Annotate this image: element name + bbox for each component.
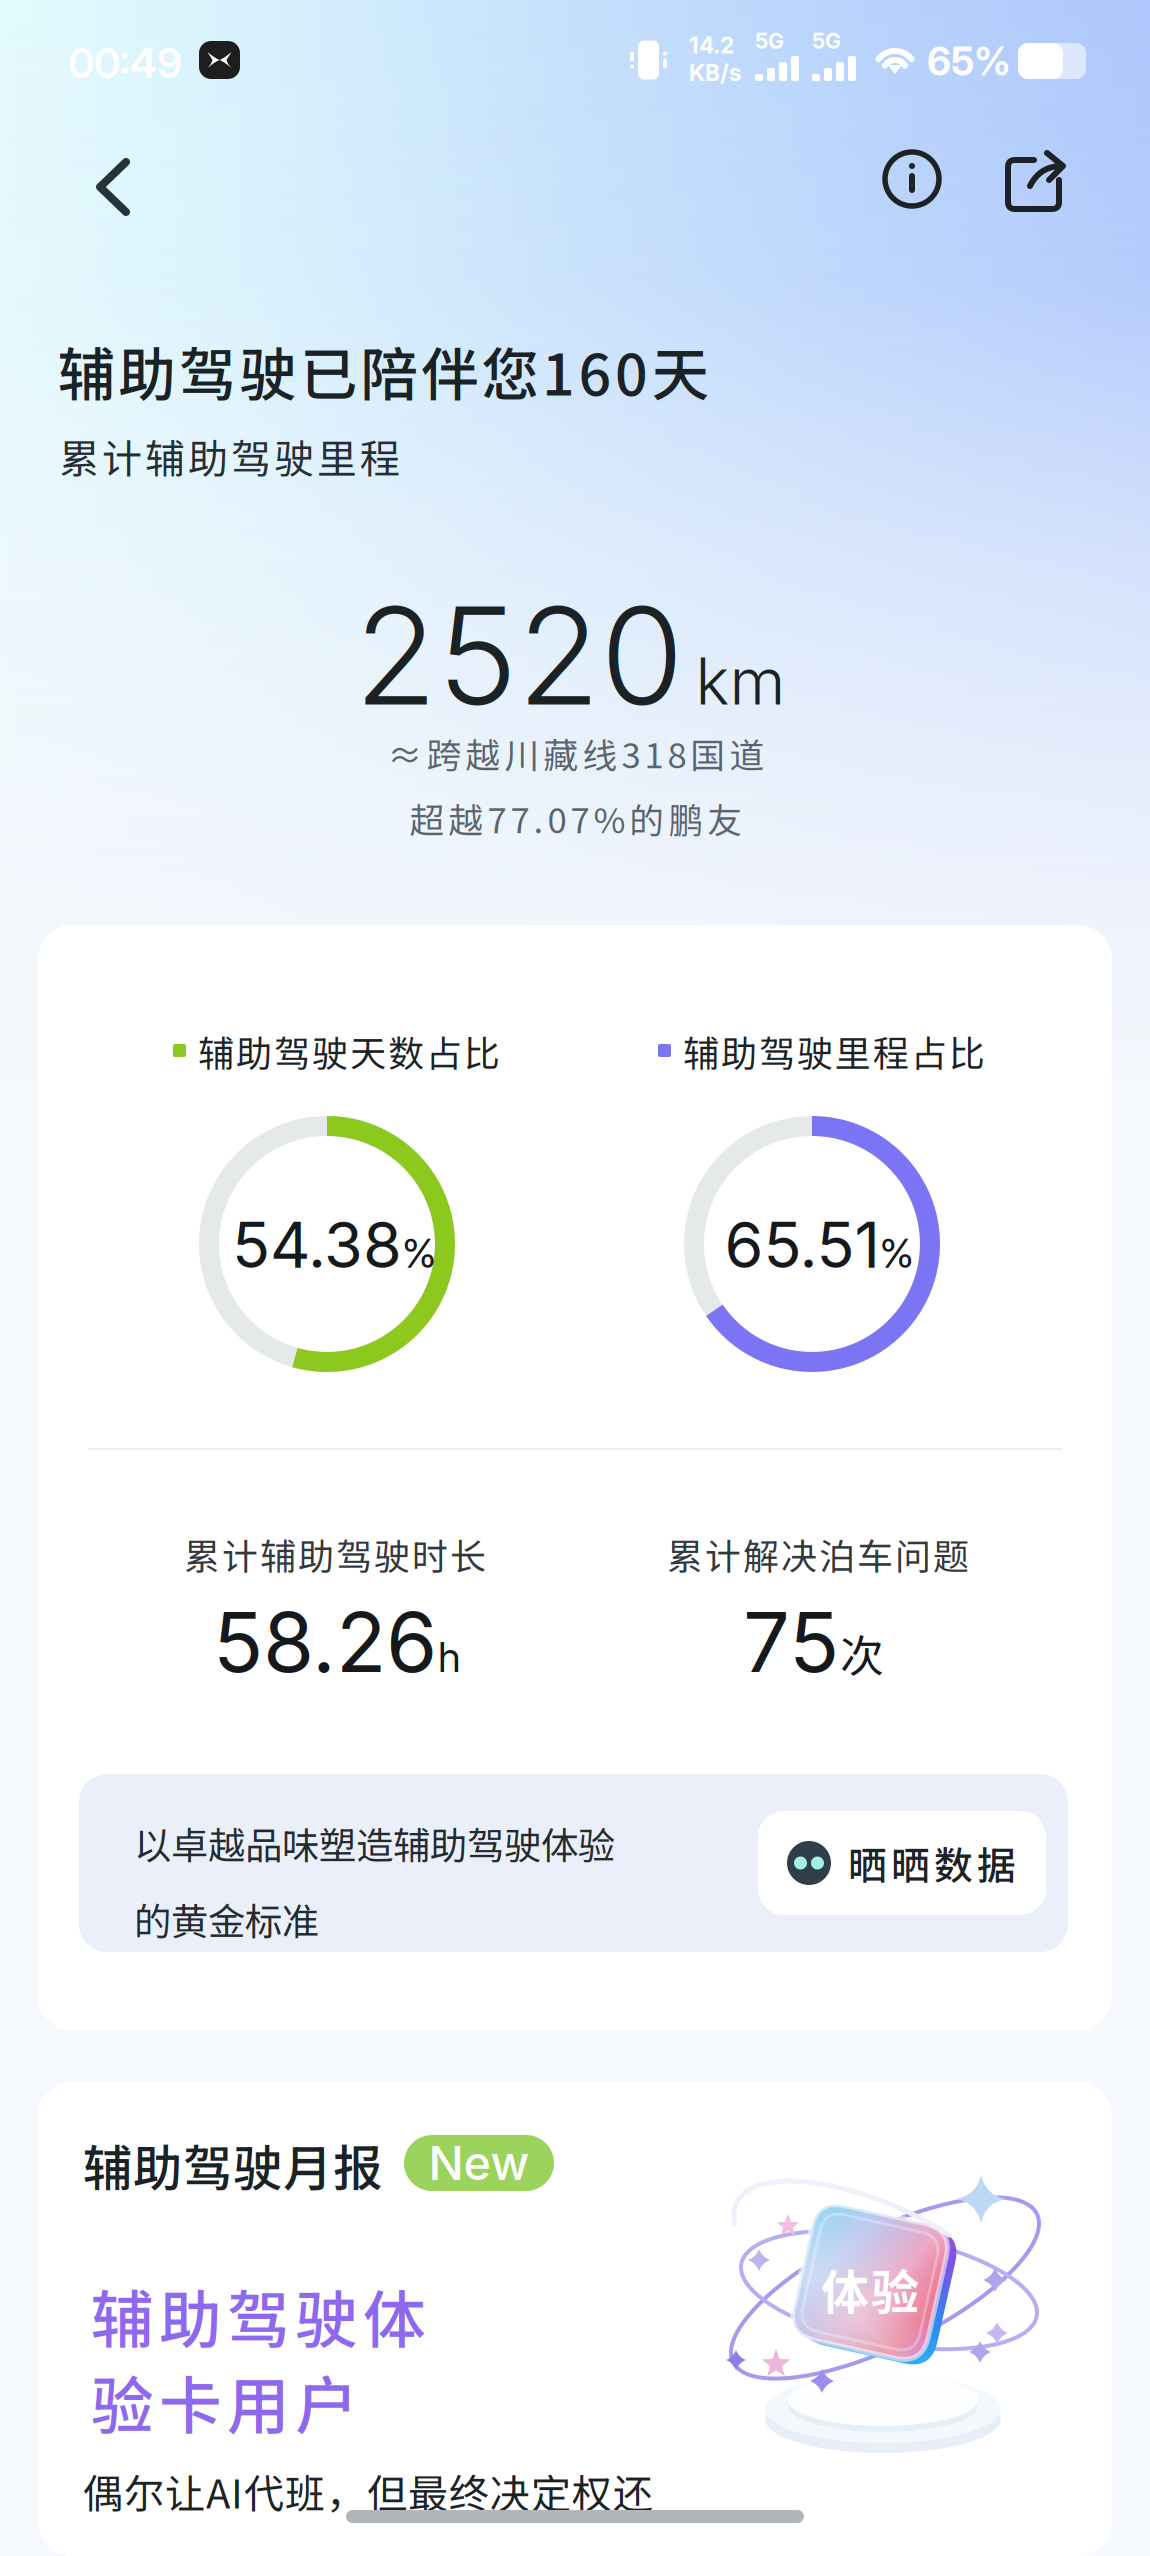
staticText: h bbox=[438, 1632, 461, 1682]
staticText: 75 bbox=[743, 1592, 839, 1692]
button[interactable]: Share bbox=[1004, 152, 1066, 222]
staticText: ≈跨越川藏线318国道 bbox=[387, 728, 764, 778]
staticText: % bbox=[879, 1229, 913, 1277]
staticText: 累计辅助驾驶里程 bbox=[59, 427, 400, 485]
staticText: 辅助驾驶天数占比 bbox=[198, 1025, 500, 1077]
staticText: 2520 bbox=[354, 574, 683, 737]
staticText: 辅助驾驶月报 bbox=[83, 2129, 382, 2200]
staticText: 超越77.07%的鹏友 bbox=[409, 793, 742, 843]
staticText: 晒晒数据 bbox=[848, 1835, 1016, 1891]
staticText: 辅助驾驶里程占比 bbox=[683, 1025, 985, 1077]
staticText: 次 bbox=[840, 1621, 884, 1685]
staticText: 的黄金标准 bbox=[134, 1892, 319, 1946]
button[interactable]: Back bbox=[92, 154, 166, 242]
staticText: 体验 bbox=[821, 2254, 919, 2324]
staticText: KB/s bbox=[689, 59, 742, 86]
staticText: 58.26 bbox=[213, 1592, 437, 1692]
button[interactable]: 晒晒数据 bbox=[758, 1811, 1046, 1915]
staticText: 5G bbox=[755, 28, 784, 54]
staticText: 验卡用户 bbox=[91, 2356, 358, 2447]
staticText: 54.38 bbox=[232, 1207, 402, 1283]
staticText: 5G bbox=[812, 28, 841, 54]
staticText: 累计解决泊车问题 bbox=[667, 1528, 969, 1580]
staticText: km bbox=[695, 642, 785, 720]
staticText: 65.51 bbox=[724, 1207, 879, 1283]
staticText: 14.2 bbox=[689, 32, 734, 59]
staticText: 累计辅助驾驶时长 bbox=[184, 1528, 486, 1580]
staticText: 00:49 bbox=[68, 38, 182, 88]
staticText: 65% bbox=[927, 38, 1011, 85]
staticText: New bbox=[428, 2135, 529, 2191]
staticText: 偶尔让AI代班，但最终决定权还 bbox=[83, 2462, 653, 2520]
button[interactable]: Information bbox=[881, 148, 943, 218]
staticText: 辅助驾驶已陪伴您160天 bbox=[58, 329, 708, 412]
staticText: 以卓越品味塑造辅助驾驶体验 bbox=[134, 1816, 615, 1870]
staticText: 辅助驾驶体 bbox=[91, 2270, 426, 2361]
staticText: % bbox=[402, 1229, 436, 1277]
